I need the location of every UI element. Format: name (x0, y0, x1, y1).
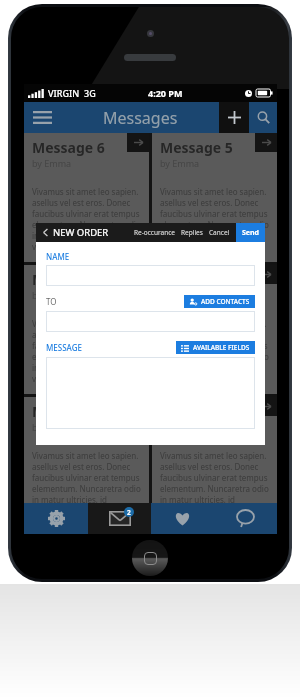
staticText: NAME (46, 251, 70, 262)
staticText: by Emma (32, 157, 72, 169)
staticText: 2 (127, 508, 131, 517)
button[interactable]: Cancel (209, 228, 230, 237)
button[interactable]: Open message (255, 397, 277, 416)
button[interactable]: Send (236, 223, 265, 242)
button[interactable] (46, 265, 255, 286)
staticText: by Emma (32, 289, 72, 301)
staticText: by Emma (160, 289, 200, 301)
staticText: NEW ORDER (53, 226, 109, 239)
staticText: Vivamus sit amet leo sapien. asellus vel… (32, 318, 141, 384)
button[interactable]: Open message (127, 265, 149, 284)
staticText: Message 2 (32, 402, 105, 421)
button[interactable]: NEW ORDER (36, 226, 113, 239)
staticText: by Emma (160, 421, 200, 433)
button[interactable]: Message 2 (24, 397, 149, 503)
staticText: Message 5 (160, 138, 233, 157)
staticText: 3G (84, 87, 96, 99)
button[interactable]: Message 5 (152, 133, 277, 262)
staticText: Vivamus sit amet leo sapien. asellus vel… (32, 186, 141, 252)
staticText: Message 3 (160, 270, 233, 289)
button[interactable]: Message 3 (152, 265, 277, 394)
staticText: Vivamus sit amet leo sapien. asellus vel… (32, 450, 141, 503)
button[interactable]: ADD CONTACTS (184, 295, 255, 308)
staticText: Messages (103, 107, 178, 129)
staticText: TO (46, 296, 57, 307)
button[interactable]: Favorites (151, 503, 214, 534)
button[interactable]: Message 1 (152, 397, 277, 503)
staticText: ADD CONTACTS (201, 297, 250, 306)
button[interactable]: Re-occurance (134, 228, 175, 237)
staticText: Vivamus sit amet leo sapien. asellus vel… (160, 186, 269, 252)
button[interactable]: Open message (255, 265, 277, 284)
staticText: Send (242, 228, 260, 238)
button[interactable]: AVAILABLE FIELDS (176, 341, 255, 354)
button[interactable]: Menu (24, 102, 61, 133)
button[interactable] (46, 357, 255, 429)
button[interactable]: Replies (181, 228, 203, 237)
staticText: by Emma (32, 421, 72, 433)
button[interactable] (46, 311, 255, 332)
button[interactable]: Chat (214, 503, 277, 534)
button[interactable]: Open message (127, 133, 149, 152)
button[interactable]: Settings (24, 503, 88, 534)
button[interactable]: Messages (88, 503, 151, 534)
button[interactable]: New message (219, 102, 249, 133)
staticText: VIRGIN (48, 87, 80, 99)
staticText: Message 6 (32, 138, 105, 157)
staticText: Vivamus sit amet leo sapien. asellus vel… (160, 318, 269, 384)
button[interactable]: Search (249, 102, 277, 133)
staticText: 4:20 PM (148, 87, 183, 99)
button[interactable]: Message 4 (24, 265, 149, 394)
staticText: Vivamus sit amet leo sapien. asellus vel… (160, 450, 269, 503)
staticText: MESSAGE (46, 342, 82, 353)
staticText: Message 4 (32, 270, 105, 289)
staticText: AVAILABLE FIELDS (193, 343, 250, 352)
staticText: by Emma (160, 157, 200, 169)
button[interactable]: Open message (255, 133, 277, 152)
button[interactable]: Message 6 (24, 133, 149, 262)
